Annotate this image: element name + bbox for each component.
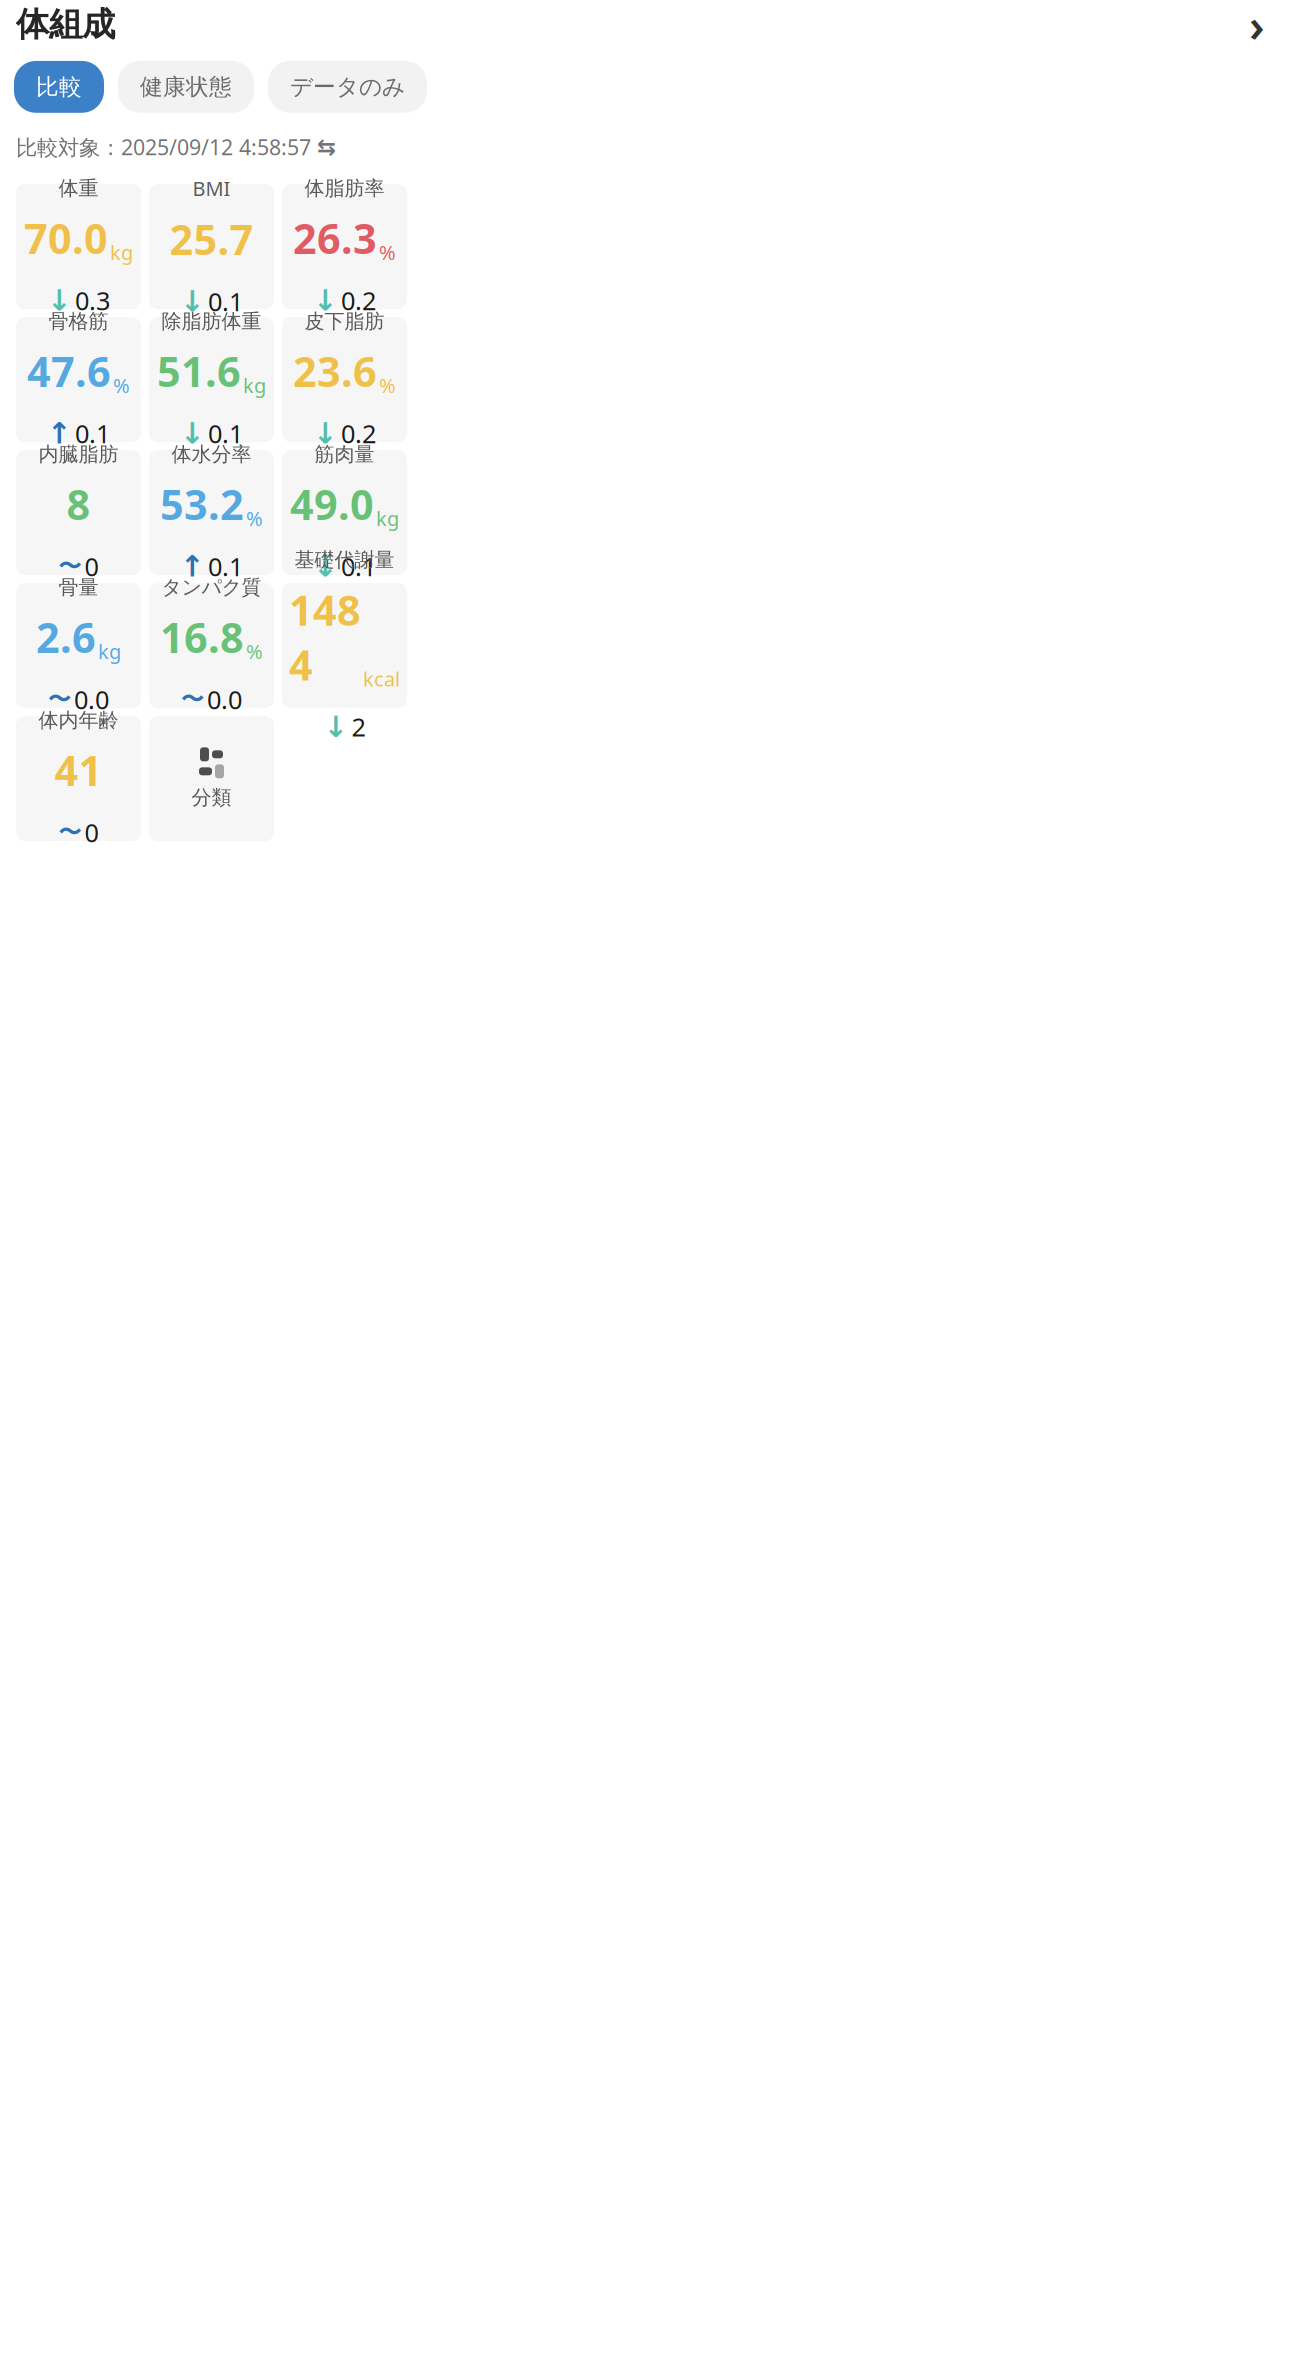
staticText: kg <box>243 372 266 399</box>
staticText: 0.0 <box>74 682 109 716</box>
button[interactable]: 体脂肪率 <box>282 184 407 309</box>
staticText: ↓ <box>313 417 338 450</box>
staticText: 26.3 <box>293 211 377 265</box>
button[interactable]: 骨量 <box>16 583 141 708</box>
button[interactable]: タンパク質 <box>149 583 274 708</box>
button[interactable]: データのみ <box>268 61 427 113</box>
staticText: 1484 <box>289 582 361 692</box>
staticText: 47.6 <box>27 344 111 398</box>
staticText: 23.6 <box>293 344 377 398</box>
staticText: % <box>379 239 396 266</box>
staticText: 49.0 <box>290 477 374 531</box>
staticText: 0.1 <box>341 549 376 583</box>
staticText: 皮下脂肪 <box>304 309 384 334</box>
staticText: 基礎代謝量 <box>294 548 394 572</box>
button[interactable]: 詳細を開く <box>1240 7 1274 41</box>
staticText: 内臓脂肪 <box>38 442 118 467</box>
staticText: 体脂肪率 <box>304 176 384 201</box>
staticText: 25.7 <box>169 212 253 266</box>
staticText: 〜 <box>58 552 81 580</box>
staticText: 0 <box>84 815 98 849</box>
staticText: 比較 <box>36 73 82 101</box>
staticText: 53.2 <box>160 477 244 531</box>
button[interactable]: 内臓脂肪 <box>16 450 141 575</box>
button[interactable]: 筋肉量 <box>282 450 407 575</box>
staticText: 体内年齢 <box>38 708 118 733</box>
staticText: 0.0 <box>207 682 242 716</box>
staticText: 0.3 <box>75 283 110 317</box>
staticText: kg <box>98 638 121 665</box>
button[interactable]: 比較対象：2025/09/12 4:58:57 <box>0 129 352 165</box>
staticText: 51.6 <box>157 344 241 398</box>
staticText: 0.1 <box>208 549 243 583</box>
staticText: ↓ <box>313 550 338 583</box>
staticText: タンパク質 <box>161 575 261 600</box>
staticText: ↓ <box>313 284 338 317</box>
staticText: kg <box>110 239 133 266</box>
staticText: 比較対象：2025/09/12 4:58:57 <box>16 133 311 161</box>
staticText: 体水分率 <box>171 442 251 467</box>
staticText: データのみ <box>290 73 405 101</box>
staticText: 0.1 <box>208 284 243 318</box>
staticText: % <box>246 638 263 665</box>
staticText: 筋肉量 <box>314 442 374 467</box>
staticText: kg <box>376 505 399 532</box>
staticText: 骨量 <box>58 575 98 600</box>
staticText: ↓ <box>180 417 205 450</box>
staticText: ↑ <box>180 550 205 583</box>
button[interactable]: 皮下脂肪 <box>282 317 407 442</box>
staticText: kcal <box>363 665 400 692</box>
staticText: BMI <box>192 175 230 202</box>
staticText: › <box>1249 0 1265 55</box>
staticText: % <box>379 372 396 399</box>
staticText: 0.2 <box>341 283 376 317</box>
staticText: % <box>246 505 263 532</box>
staticText: ↓ <box>323 710 348 743</box>
staticText: ↓ <box>180 285 205 318</box>
staticText: 〜 <box>48 685 71 713</box>
staticText: 分類 <box>191 785 231 810</box>
staticText: 2.6 <box>36 610 96 664</box>
staticText: 0.2 <box>341 416 376 450</box>
staticText: 70.0 <box>24 211 108 265</box>
button[interactable]: 除脂肪体重 <box>149 317 274 442</box>
staticText: 〜 <box>181 685 204 713</box>
button[interactable]: 体重 <box>16 184 141 309</box>
button[interactable]: 健康状態 <box>118 61 254 113</box>
staticText: 健康状態 <box>140 73 232 101</box>
button[interactable]: 分類 <box>149 716 274 841</box>
staticText: ↓ <box>47 284 72 317</box>
staticText: 0.1 <box>75 416 110 450</box>
staticText: 骨格筋 <box>48 309 108 334</box>
staticText: 〜 <box>58 818 81 846</box>
staticText: ↑ <box>47 417 72 450</box>
staticText: 2 <box>351 710 365 744</box>
button[interactable]: 体内年齢 <box>16 716 141 841</box>
button[interactable]: BMI <box>149 184 274 309</box>
staticText: ⇆ <box>317 134 336 160</box>
staticText: 体重 <box>58 176 98 201</box>
staticText: 41 <box>54 743 102 797</box>
staticText: 16.8 <box>160 610 244 664</box>
staticText: % <box>113 372 130 399</box>
button[interactable]: 基礎代謝量 <box>282 583 407 708</box>
staticText: 0.1 <box>208 416 243 450</box>
staticText: 体組成 <box>16 4 115 45</box>
button[interactable]: 比較 <box>14 61 104 113</box>
button[interactable]: 体水分率 <box>149 450 274 575</box>
staticText: 除脂肪体重 <box>161 309 261 334</box>
staticText: 0 <box>84 549 98 583</box>
staticText: 8 <box>66 477 90 531</box>
button[interactable]: 骨格筋 <box>16 317 141 442</box>
